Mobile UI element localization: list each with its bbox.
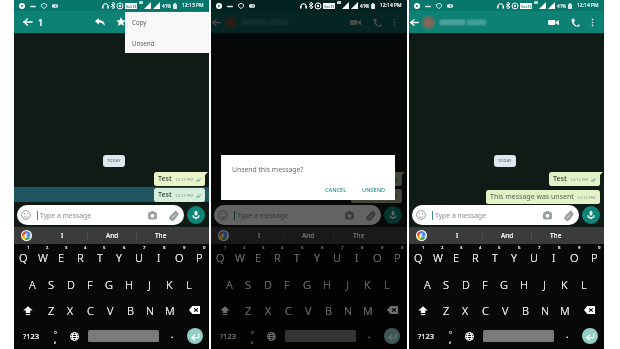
button[interactable]: Space <box>88 330 159 342</box>
button[interactable]: Call <box>369 14 385 30</box>
button[interactable]: G <box>494 271 514 297</box>
button[interactable]: Enter <box>582 328 598 344</box>
button[interactable]: Enter <box>187 328 203 344</box>
button[interactable]: , <box>244 323 260 349</box>
button[interactable]: V <box>298 297 318 323</box>
button[interactable]: O <box>169 244 189 271</box>
button[interactable]: V <box>100 297 120 323</box>
button[interactable]: Y <box>109 244 129 271</box>
button[interactable]: A <box>23 271 42 297</box>
button[interactable]: X <box>258 297 278 323</box>
button[interactable]: The <box>532 227 580 244</box>
button[interactable]: T <box>90 244 109 271</box>
button[interactable]: Camera <box>341 207 357 223</box>
button[interactable]: Backspace <box>180 297 209 323</box>
button[interactable]: S <box>437 271 456 297</box>
button[interactable]: L <box>179 271 199 297</box>
button[interactable]: UNSEND <box>359 184 389 196</box>
button[interactable]: N <box>140 297 160 323</box>
button[interactable]: P <box>584 244 604 271</box>
button[interactable]: Camera <box>539 207 555 223</box>
button[interactable]: H <box>119 271 139 297</box>
button[interactable]: J <box>534 271 554 297</box>
button[interactable]: Backspace <box>575 297 604 323</box>
button[interactable]: W <box>33 244 52 271</box>
button[interactable]: And <box>88 227 136 244</box>
button[interactable]: Back <box>20 14 36 30</box>
button[interactable]: I <box>347 244 367 271</box>
button[interactable]: Unsend <box>125 32 209 53</box>
button[interactable]: C <box>80 297 100 323</box>
button[interactable]: Backspace <box>378 297 407 323</box>
button[interactable]: Shift <box>211 297 239 323</box>
button[interactable]: Back <box>407 15 422 30</box>
button[interactable]: Voice message <box>187 206 205 224</box>
button[interactable]: F <box>80 271 99 297</box>
button[interactable]: P <box>387 244 407 271</box>
button[interactable]: M <box>555 297 575 323</box>
button[interactable]: J <box>337 271 357 297</box>
button[interactable]: ?123 <box>415 323 437 349</box>
button[interactable]: C <box>475 297 495 323</box>
button[interactable]: I <box>235 227 283 244</box>
button[interactable]: Space <box>483 330 554 342</box>
button[interactable]: O <box>367 244 387 271</box>
button[interactable]: R <box>466 244 485 271</box>
button[interactable]: . <box>361 323 377 349</box>
button[interactable]: U <box>327 244 347 271</box>
button[interactable]: S <box>42 271 61 297</box>
button[interactable]: Z <box>42 297 61 323</box>
button[interactable]: S <box>239 271 258 297</box>
button[interactable]: A <box>220 271 239 297</box>
button[interactable]: P <box>189 244 209 271</box>
button[interactable]: G <box>297 271 317 297</box>
button[interactable]: I <box>38 227 87 244</box>
button[interactable]: Attach <box>560 207 576 223</box>
button[interactable]: Shift <box>14 297 42 323</box>
button[interactable]: R <box>268 244 287 271</box>
button[interactable]: D <box>258 271 277 297</box>
button[interactable]: Enter <box>384 328 400 344</box>
button[interactable] <box>214 205 381 225</box>
button[interactable]: Attach <box>362 207 378 223</box>
button[interactable]: O <box>564 244 584 271</box>
button[interactable]: E <box>249 244 268 271</box>
button[interactable]: The <box>334 227 383 244</box>
button[interactable]: . <box>559 323 575 349</box>
button[interactable]: Z <box>437 297 456 323</box>
button[interactable]: B <box>120 297 140 323</box>
button[interactable]: . <box>164 323 180 349</box>
button[interactable]: Y <box>307 244 327 271</box>
button[interactable]: J <box>139 271 159 297</box>
button[interactable]: And <box>483 227 531 244</box>
button[interactable]: Voice message <box>582 206 600 224</box>
button[interactable]: Reply <box>92 14 108 30</box>
button[interactable]: Y <box>504 244 524 271</box>
button[interactable]: Video call <box>347 14 363 30</box>
button[interactable]: E <box>447 244 466 271</box>
button[interactable]: More options <box>585 15 599 29</box>
button[interactable]: Q <box>409 244 428 271</box>
button[interactable]: H <box>514 271 534 297</box>
button[interactable]: Video call <box>545 14 561 30</box>
button[interactable]: V <box>495 297 515 323</box>
button[interactable]: T <box>485 244 504 271</box>
button[interactable]: H <box>317 271 337 297</box>
button[interactable]: F <box>277 271 297 297</box>
button[interactable]: X <box>456 297 475 323</box>
button[interactable]: More options <box>387 15 401 29</box>
button[interactable] <box>412 205 579 225</box>
button[interactable]: ?123 <box>20 323 42 349</box>
button[interactable]: T <box>287 244 307 271</box>
button[interactable]: K <box>159 271 179 297</box>
button[interactable]: , <box>442 323 458 349</box>
button[interactable]: W <box>230 244 249 271</box>
button[interactable]: Camera <box>144 207 160 223</box>
button[interactable]: M <box>358 297 378 323</box>
button[interactable]: And <box>284 227 333 244</box>
button[interactable]: CANCEL <box>322 184 350 196</box>
button[interactable]: K <box>554 271 574 297</box>
button[interactable]: D <box>61 271 80 297</box>
button[interactable]: G <box>99 271 119 297</box>
